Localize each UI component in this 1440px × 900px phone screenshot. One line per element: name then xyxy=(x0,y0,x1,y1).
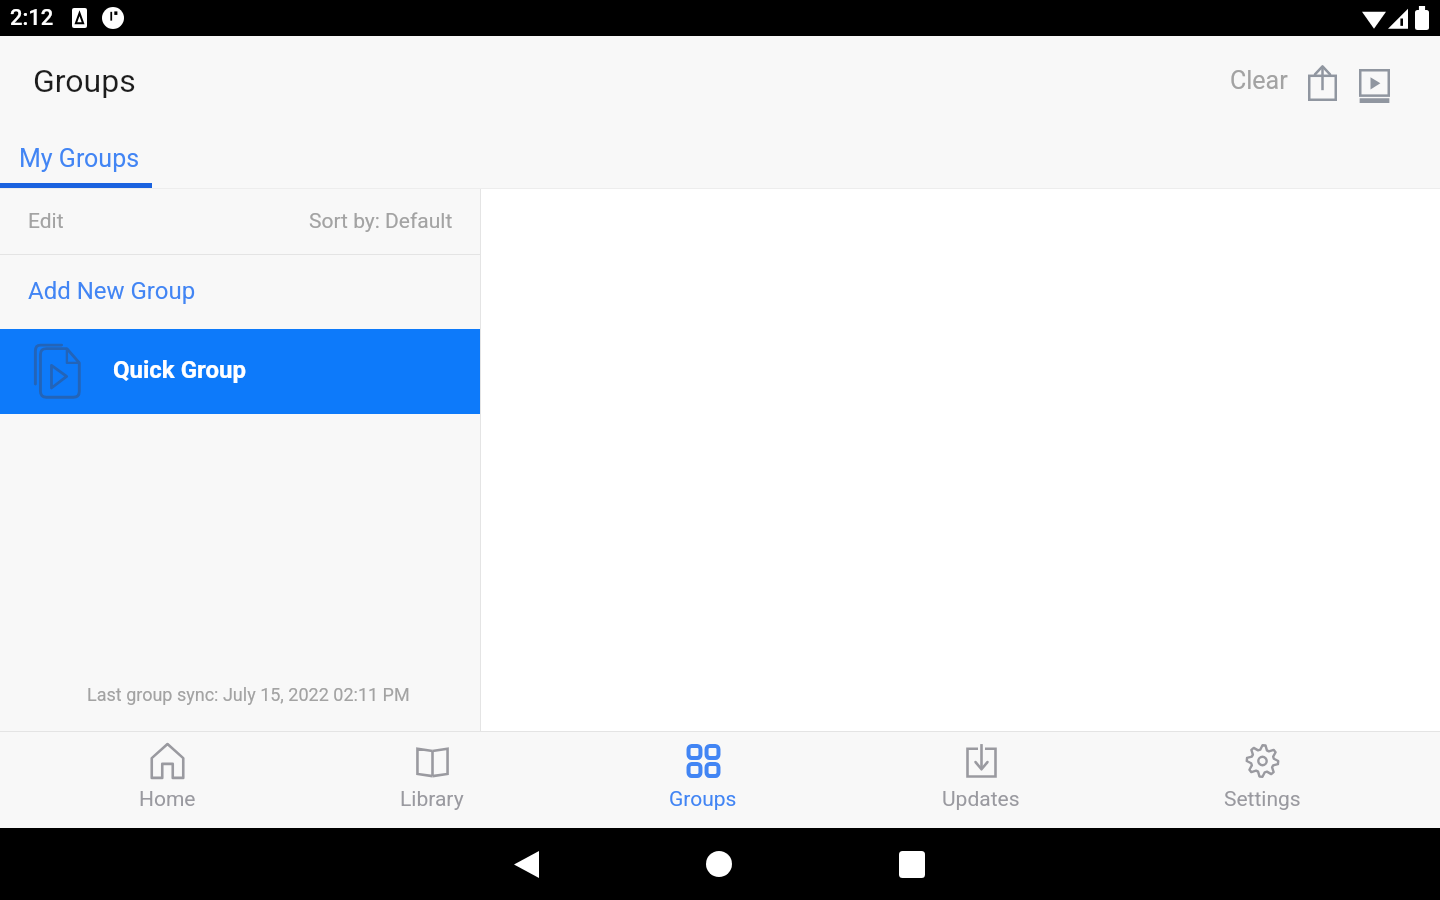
button[interactable]: Clear xyxy=(1214,55,1304,106)
button[interactable]: Sort by: Default xyxy=(309,209,453,234)
staticText: Home xyxy=(139,787,196,812)
button[interactable]: Updates xyxy=(876,732,1086,828)
button[interactable]: Home xyxy=(689,828,749,900)
staticText: Updates xyxy=(942,787,1020,812)
button[interactable]: Quick Group xyxy=(0,329,480,414)
staticText: Groups xyxy=(33,62,136,100)
button[interactable]: Groups xyxy=(603,732,803,828)
staticText: My Groups xyxy=(19,144,140,173)
staticText: Settings xyxy=(1224,787,1301,812)
button[interactable]: Share xyxy=(1299,59,1346,106)
staticText: Quick Group xyxy=(113,356,246,384)
staticText: Library xyxy=(400,787,464,812)
button[interactable]: Groups xyxy=(33,62,136,100)
button[interactable]: Play xyxy=(1351,62,1398,109)
staticText: Clear xyxy=(1230,66,1288,95)
button[interactable]: Back xyxy=(496,828,556,900)
staticText: Groups xyxy=(669,787,737,812)
button[interactable]: Add New Group xyxy=(0,255,480,329)
button[interactable]: Home xyxy=(73,732,262,828)
staticText: Last group sync: July 15, 2022 02:11 PM xyxy=(87,684,410,705)
staticText: Add New Group xyxy=(28,277,196,305)
button[interactable]: Edit xyxy=(28,209,64,234)
button[interactable]: My Groups xyxy=(0,118,152,183)
button[interactable]: Settings xyxy=(1158,732,1367,828)
button[interactable]: Recents xyxy=(882,828,942,900)
button[interactable]: Library xyxy=(334,732,530,828)
staticText: 2:12 xyxy=(10,5,54,31)
